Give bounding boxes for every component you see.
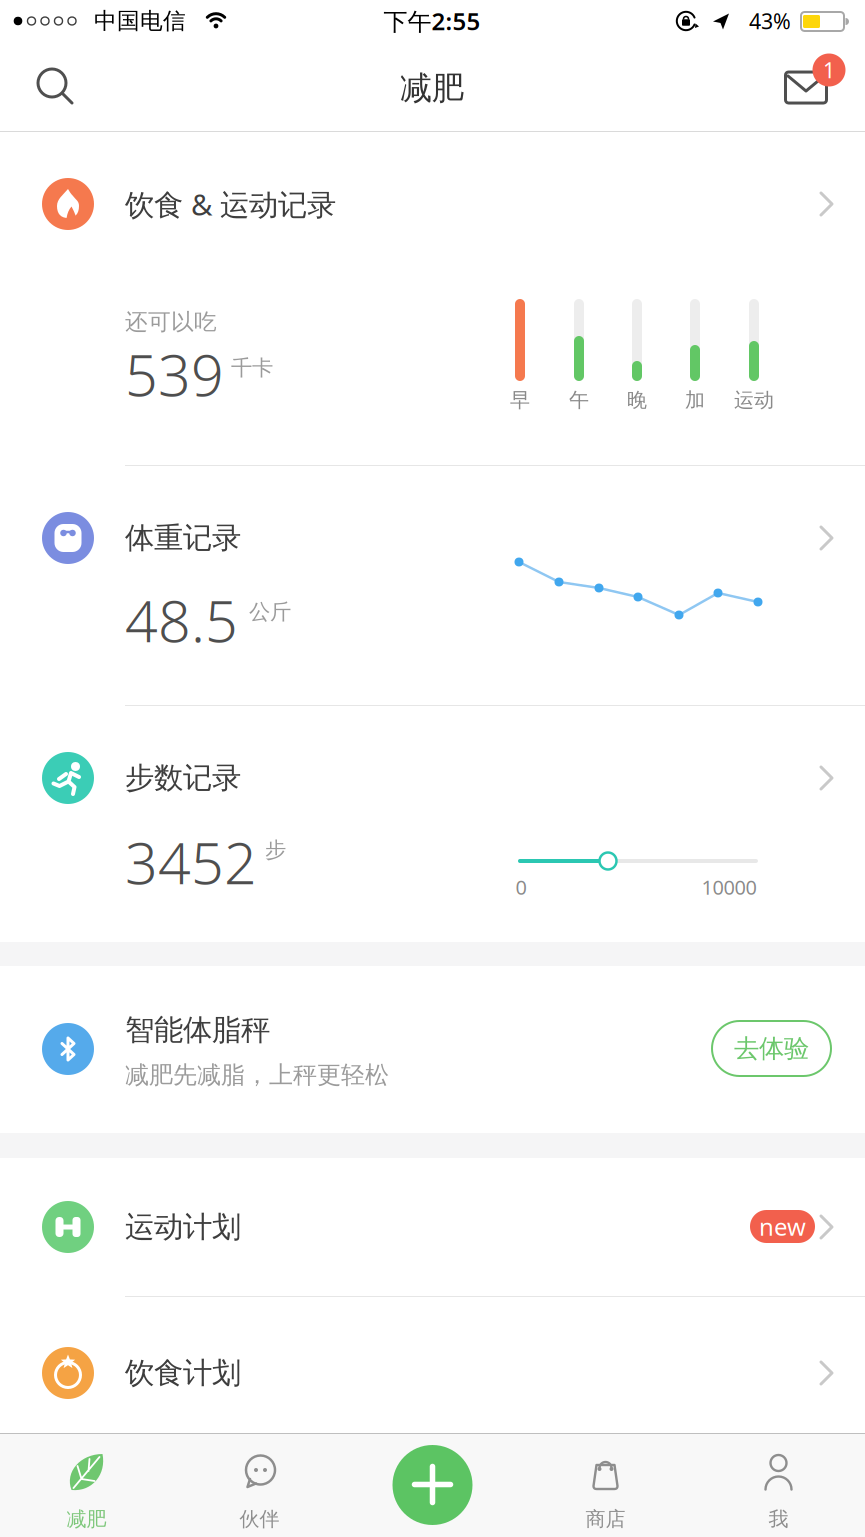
staticText: 去体验 bbox=[734, 1033, 809, 1064]
staticText: 下午2:55 bbox=[383, 5, 480, 37]
button[interactable]: 我 bbox=[692, 1433, 865, 1537]
staticText: 商店 bbox=[585, 1507, 625, 1531]
staticText: 步数记录 bbox=[125, 760, 241, 796]
staticText: 我 bbox=[768, 1507, 788, 1531]
staticText: 智能体脂秤 bbox=[125, 1012, 270, 1048]
staticText: 饮食 & 运动记录 bbox=[125, 184, 336, 223]
staticText: 千卡 bbox=[231, 355, 273, 381]
staticText: 1 bbox=[823, 56, 835, 84]
staticText: 539 bbox=[125, 336, 224, 412]
staticText: 晚 bbox=[627, 388, 647, 412]
staticText: 还可以吃 bbox=[125, 308, 217, 336]
button[interactable]: 步数记录 bbox=[0, 706, 865, 942]
button[interactable]: 运动计划 bbox=[0, 1158, 865, 1297]
staticText: 10000 bbox=[701, 874, 756, 900]
staticText: 伙伴 bbox=[239, 1507, 279, 1531]
button[interactable]: 1 bbox=[750, 44, 865, 132]
button[interactable]: 智能体脂秤 bbox=[0, 966, 865, 1133]
staticText: 48.5 bbox=[125, 582, 238, 658]
staticText: 运动计划 bbox=[125, 1209, 241, 1245]
button[interactable]: 体重记录 bbox=[0, 466, 865, 706]
button[interactable]: 饮食计划 bbox=[0, 1297, 865, 1433]
staticText: 中国电信 bbox=[94, 7, 186, 35]
button[interactable]: 去体验 bbox=[712, 1021, 831, 1076]
staticText: 3452 bbox=[125, 824, 257, 900]
staticText: 减肥 bbox=[66, 1507, 106, 1531]
staticText: 饮食计划 bbox=[125, 1355, 241, 1391]
staticText: 早 bbox=[510, 388, 530, 412]
staticText: 公斤 bbox=[249, 599, 291, 625]
button[interactable]: 伙伴 bbox=[173, 1433, 346, 1537]
button[interactable]: 商店 bbox=[519, 1433, 692, 1537]
button[interactable] bbox=[346, 1433, 519, 1537]
staticText: new bbox=[759, 1211, 806, 1242]
staticText: 0 bbox=[515, 874, 526, 900]
staticText: 减肥先减脂，上秤更轻松 bbox=[125, 1060, 389, 1090]
staticText: 43% bbox=[749, 7, 791, 35]
staticText: 减肥 bbox=[400, 68, 464, 108]
button[interactable] bbox=[0, 44, 100, 132]
staticText: 步 bbox=[265, 837, 286, 863]
staticText: 体重记录 bbox=[125, 520, 241, 556]
staticText: 午 bbox=[569, 388, 589, 412]
staticText: 加 bbox=[685, 388, 705, 412]
button[interactable]: 减肥 bbox=[0, 1433, 173, 1537]
button[interactable]: 饮食 & 运动记录 bbox=[0, 132, 865, 466]
staticText: 运动 bbox=[734, 388, 774, 412]
